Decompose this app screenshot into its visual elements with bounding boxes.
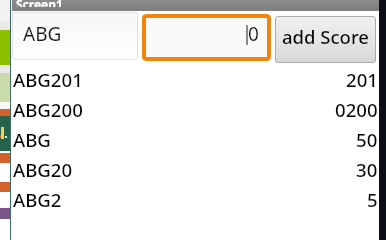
button[interactable]: ABG [12, 124, 379, 154]
staticText: 30 [356, 157, 378, 182]
staticText: Screen1 [16, 0, 63, 7]
staticText: 0 [248, 21, 259, 47]
button[interactable]: ABG20 [12, 154, 379, 184]
button[interactable]: ABG2 [12, 184, 379, 214]
staticText: ABG200 [13, 97, 83, 122]
staticText: 201 [346, 67, 378, 92]
staticText: 5 [367, 187, 378, 212]
staticText: add Score [282, 24, 369, 49]
button[interactable]: add Score [275, 16, 376, 63]
staticText: ABG [13, 127, 51, 152]
staticText: ABG [23, 21, 62, 47]
staticText: 50 [356, 127, 378, 152]
staticText: 0200 [335, 97, 378, 122]
button[interactable]: ABG [12, 12, 138, 60]
staticText: ABG201 [13, 67, 83, 92]
staticText: ABG20 [13, 157, 73, 182]
button[interactable]: ABG201 [12, 64, 379, 94]
staticText: ABG2 [13, 187, 62, 212]
button[interactable]: ABG200 [12, 94, 379, 124]
button[interactable]: 0 [142, 14, 271, 61]
